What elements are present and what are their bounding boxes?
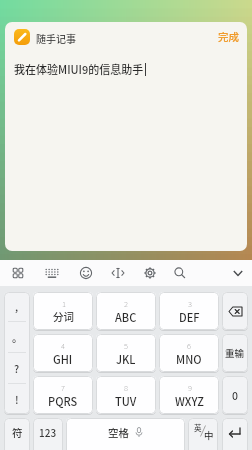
staticText: WXYZ — [175, 393, 204, 409]
staticText: 随手记事 — [36, 31, 76, 45]
button[interactable] — [168, 261, 192, 285]
staticText: 英 — [194, 422, 202, 433]
button[interactable]: 。 — [4, 322, 30, 352]
button[interactable]: 完成 — [211, 26, 245, 46]
staticText: 4 — [61, 340, 65, 351]
staticText: GHI — [53, 351, 73, 367]
staticText: 我在体验MIUI9的信息助手 — [14, 61, 144, 77]
button[interactable] — [226, 261, 250, 285]
staticText: 0 — [232, 388, 238, 403]
button[interactable]: 8 — [96, 376, 156, 414]
staticText: 5 — [124, 340, 128, 351]
staticText: 6 — [187, 340, 191, 351]
button[interactable] — [74, 261, 98, 285]
staticText: 8 — [124, 382, 128, 393]
button[interactable] — [14, 29, 30, 45]
staticText: ? — [14, 361, 20, 376]
button[interactable]: 2 — [96, 292, 156, 330]
staticText: TUV — [115, 393, 137, 409]
button[interactable]: 9 — [159, 376, 219, 414]
staticText: 重输 — [225, 346, 245, 360]
button[interactable]: 3 — [159, 292, 219, 330]
button[interactable]: ! — [4, 384, 30, 414]
staticText: 9 — [188, 382, 192, 393]
staticText: 123 — [39, 425, 57, 439]
button[interactable]: 英 — [188, 418, 218, 450]
button[interactable]: 0 — [222, 376, 248, 414]
button[interactable]: 7 — [33, 376, 93, 414]
staticText: ! — [15, 392, 19, 407]
staticText: 符 — [12, 425, 23, 440]
button[interactable]: ? — [4, 353, 30, 383]
staticText: PQRS — [48, 393, 78, 409]
staticText: 3 — [188, 298, 192, 309]
button[interactable] — [222, 292, 248, 330]
button[interactable] — [40, 261, 64, 285]
staticText: , — [15, 299, 19, 314]
button[interactable] — [106, 261, 130, 285]
staticText: 空格 — [108, 425, 129, 440]
staticText: ABC — [115, 309, 137, 325]
staticText: 2 — [124, 298, 128, 309]
staticText: 分词 — [53, 309, 74, 324]
staticText: 完成 — [218, 29, 239, 44]
staticText: DEF — [179, 309, 200, 325]
button[interactable] — [138, 261, 162, 285]
staticText: 。 — [12, 330, 23, 345]
staticText: 7 — [61, 382, 65, 393]
staticText: JKL — [116, 351, 136, 367]
staticText: 1 — [62, 298, 66, 309]
button[interactable] — [6, 261, 30, 285]
button[interactable]: 符 — [4, 418, 30, 450]
button[interactable]: 重输 — [222, 334, 248, 372]
button[interactable]: 6 — [159, 334, 219, 372]
button[interactable]: 空格 — [66, 418, 185, 450]
button[interactable]: 4 — [33, 334, 93, 372]
button[interactable]: 5 — [96, 334, 156, 372]
button[interactable]: , — [4, 292, 30, 321]
button[interactable]: 123 — [33, 418, 63, 450]
staticText: MNO — [176, 351, 202, 367]
button[interactable]: 1 — [33, 292, 93, 330]
button[interactable] — [222, 418, 248, 450]
staticText: 中 — [204, 428, 214, 442]
